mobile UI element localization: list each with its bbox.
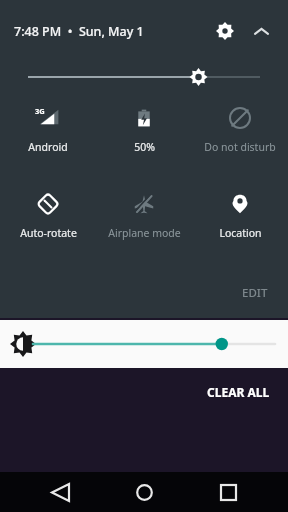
button[interactable]: Camera [236,52,278,94]
button[interactable]: Location [192,190,288,252]
staticText: 3G [35,106,45,116]
button[interactable]: Phone [10,52,52,94]
button[interactable]: Home [120,472,168,512]
button[interactable]: Back [36,472,84,512]
staticText: Do not disturb [204,140,276,154]
button[interactable]: Do not disturb [192,104,288,166]
staticText: Auto-rotate [20,226,77,240]
button[interactable]: Auto-rotate [0,190,96,252]
button[interactable]: EDIT [236,282,274,304]
button[interactable] [0,62,288,92]
staticText: EDIT [242,285,268,301]
staticText: Android [28,140,68,154]
button[interactable]: 50% [96,104,192,166]
button[interactable]: CLEAR ALL [203,381,274,403]
staticText: 50% [134,140,155,154]
button[interactable]: Collapse [244,14,278,48]
button[interactable]: Chrome [180,52,222,94]
staticText: 7:48 PM • Sun, May 1 [14,23,144,40]
button[interactable]: 3G [0,104,96,166]
button[interactable]: Messages [67,52,109,94]
button[interactable]: Settings [206,12,244,50]
button[interactable]: Airplane mode [96,190,192,252]
button[interactable]: All apps [123,52,165,94]
staticText: Location [219,226,262,240]
button[interactable]: Recents [204,472,252,512]
button[interactable] [0,320,288,368]
staticText: CLEAR ALL [207,384,270,400]
staticText: Airplane mode [108,226,181,240]
